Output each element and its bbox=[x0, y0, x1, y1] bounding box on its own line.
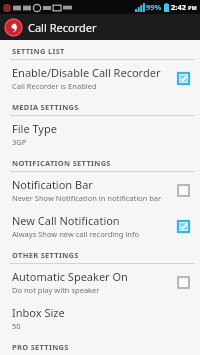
staticText: 50 bbox=[12, 321, 21, 331]
staticText: 2:42 bbox=[171, 2, 186, 12]
button[interactable]: Automatic Speaker On bbox=[0, 264, 200, 300]
staticText: Never Show Notification in notification … bbox=[12, 193, 162, 203]
button[interactable]: Notification Bar bbox=[0, 172, 200, 208]
staticText: PM bbox=[188, 4, 197, 11]
staticText: Do not play with speaker bbox=[12, 285, 100, 295]
staticText: File Type bbox=[12, 121, 57, 136]
staticText: NOTIFICATION SETTINGS bbox=[12, 158, 111, 168]
staticText: OTHER SETTINGS bbox=[12, 250, 79, 260]
staticText: Enable/Disable Call Recorder bbox=[12, 65, 161, 80]
button[interactable]: Unchecked bbox=[174, 273, 192, 291]
button[interactable]: Checked bbox=[174, 69, 192, 87]
staticText: PRO SETTINGS bbox=[12, 342, 69, 352]
button[interactable]: Unchecked bbox=[174, 181, 192, 199]
button[interactable]: Inbox Size bbox=[0, 300, 200, 336]
staticText: Call Recorder bbox=[28, 20, 97, 35]
staticText: SETTING LIST bbox=[12, 46, 65, 56]
staticText: MEDIA SETTINGS bbox=[12, 102, 79, 112]
staticText: Automatic Speaker On bbox=[12, 269, 128, 284]
staticText: Inbox Size bbox=[12, 305, 65, 320]
staticText: Always Show new call recording info bbox=[12, 229, 140, 239]
button[interactable]: Enable/Disable Call Recorder bbox=[0, 60, 200, 96]
button[interactable]: New Call Notification bbox=[0, 208, 200, 244]
staticText: New Call Notification bbox=[12, 213, 120, 228]
button[interactable]: Checked bbox=[174, 217, 192, 235]
staticText: Notification Bar bbox=[12, 177, 93, 192]
staticText: 99% bbox=[146, 2, 162, 12]
button[interactable]: File Type bbox=[0, 116, 200, 152]
staticText: 3GP bbox=[12, 137, 27, 147]
button[interactable]: Call Recorder bbox=[0, 14, 200, 40]
staticText: Call Recorder is Enabled bbox=[12, 81, 97, 91]
